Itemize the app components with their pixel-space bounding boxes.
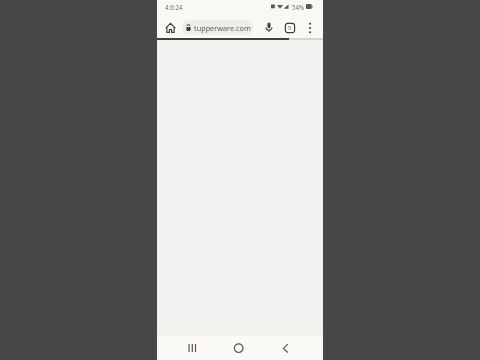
button[interactable] [274,337,295,358]
staticText: 5 [288,24,292,32]
staticText: tupperware.com [194,23,251,33]
button[interactable]: tupperware.com [182,20,253,35]
button[interactable] [183,337,204,358]
button[interactable] [227,337,248,358]
button[interactable] [163,20,179,36]
button[interactable] [282,20,298,36]
staticText: 4:6:24 [165,3,183,11]
staticText: 54% [292,3,305,11]
button[interactable] [303,20,317,34]
button[interactable] [261,20,277,36]
